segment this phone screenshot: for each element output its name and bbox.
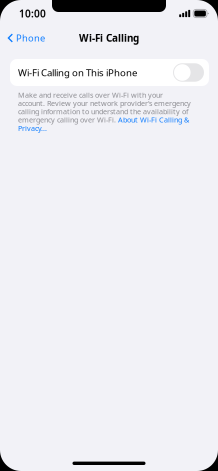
staticText: 10:00: [19, 7, 46, 20]
staticText: emergency calling over Wi-Fi.: [18, 115, 118, 125]
staticText: account. Review your network provider's …: [18, 98, 191, 108]
staticText: Privacy...: [18, 123, 47, 133]
button[interactable]: Phone: [0, 27, 53, 49]
staticText: calling information to understand the av…: [18, 107, 188, 116]
staticText: Wi-Fi Calling: [79, 31, 139, 45]
staticText: Make and receive calls over Wi-Fi with y…: [18, 90, 163, 100]
staticText: About Wi-Fi Calling &: [118, 115, 189, 125]
button[interactable]: Wi-Fi Calling on This iPhone: [10, 59, 209, 86]
staticText: Wi-Fi Calling on This iPhone: [18, 66, 137, 79]
staticText: Phone: [16, 32, 45, 44]
button[interactable]: Make and receive calls over Wi-Fi with y…: [10, 86, 209, 133]
